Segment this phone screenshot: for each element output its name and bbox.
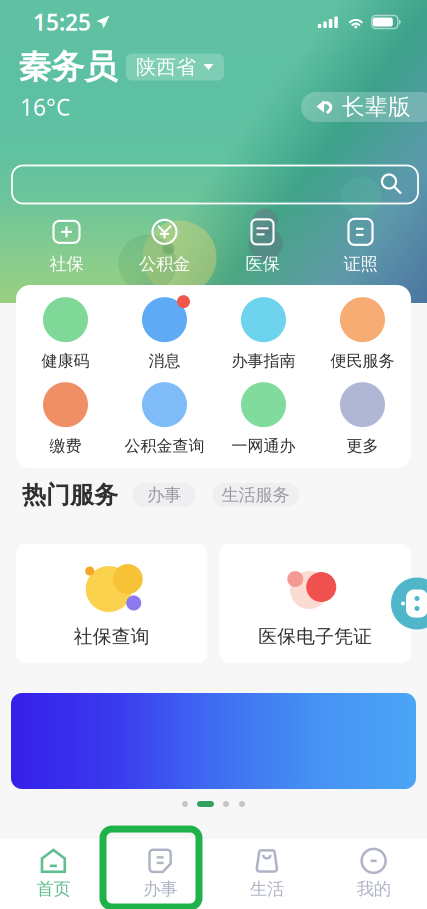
button[interactable]: 更多 — [313, 380, 412, 458]
staticText: 我的 — [357, 878, 391, 900]
staticText: 15:25 — [33, 7, 91, 37]
button[interactable]: 社保查询 — [16, 544, 207, 663]
staticText: 秦务员 — [18, 46, 117, 87]
staticText: 办事 — [147, 484, 181, 506]
staticText: 健康码 — [41, 351, 89, 371]
button[interactable]: 办事 — [107, 839, 214, 909]
staticText: 公积金 — [139, 253, 190, 275]
button[interactable]: 智能助手 — [391, 577, 427, 629]
button[interactable]: 首页 — [0, 839, 107, 909]
staticText: 消息 — [148, 351, 180, 371]
button[interactable]: 生活服务 — [212, 483, 299, 507]
staticText: 医保 — [245, 253, 279, 275]
button[interactable]: 一网通办 — [214, 380, 313, 458]
button[interactable]: 医保 — [213, 215, 311, 277]
staticText: 长辈版 — [342, 93, 411, 121]
button[interactable]: 办事指南 — [214, 295, 313, 373]
button[interactable]: 消息 — [115, 295, 214, 373]
staticText: 生活 — [250, 878, 284, 900]
staticText: 更多 — [346, 436, 378, 456]
staticText: 医保电子凭证 — [258, 625, 372, 648]
button[interactable]: 健康码 — [16, 295, 115, 373]
staticText: 热门服务 — [22, 480, 118, 510]
staticText: 便民服务 — [330, 351, 394, 371]
staticText: 缴费 — [49, 436, 81, 456]
button[interactable]: 社保 — [17, 215, 115, 277]
button[interactable]: 公积金 — [115, 215, 213, 277]
staticText: 首页 — [36, 878, 70, 900]
button[interactable]: 我的 — [320, 839, 427, 909]
staticText: 公积金查询 — [124, 436, 204, 456]
staticText: 一网通办 — [231, 436, 295, 456]
staticText: 陕西省 — [136, 55, 196, 79]
staticText: 办事指南 — [231, 351, 295, 371]
button[interactable] — [12, 165, 418, 203]
button[interactable]: 缴费 — [16, 380, 115, 458]
button[interactable]: 医保电子凭证 — [219, 544, 411, 663]
button[interactable]: 长辈版 — [301, 92, 427, 122]
button[interactable]: 便民服务 — [313, 295, 412, 373]
button[interactable]: 公积金查询 — [115, 380, 214, 458]
button[interactable]: 证照 — [311, 215, 409, 277]
staticText: 生活服务 — [221, 484, 289, 506]
staticText: 办事 — [143, 878, 177, 900]
staticText: 16°C — [20, 92, 70, 122]
button[interactable]: 办事 — [132, 483, 196, 507]
staticText: 社保查询 — [74, 625, 150, 648]
staticText: 证照 — [343, 253, 377, 275]
staticText: 社保 — [49, 253, 83, 275]
button[interactable]: 陕西省 — [126, 53, 224, 80]
button[interactable]: 生活 — [213, 839, 320, 909]
